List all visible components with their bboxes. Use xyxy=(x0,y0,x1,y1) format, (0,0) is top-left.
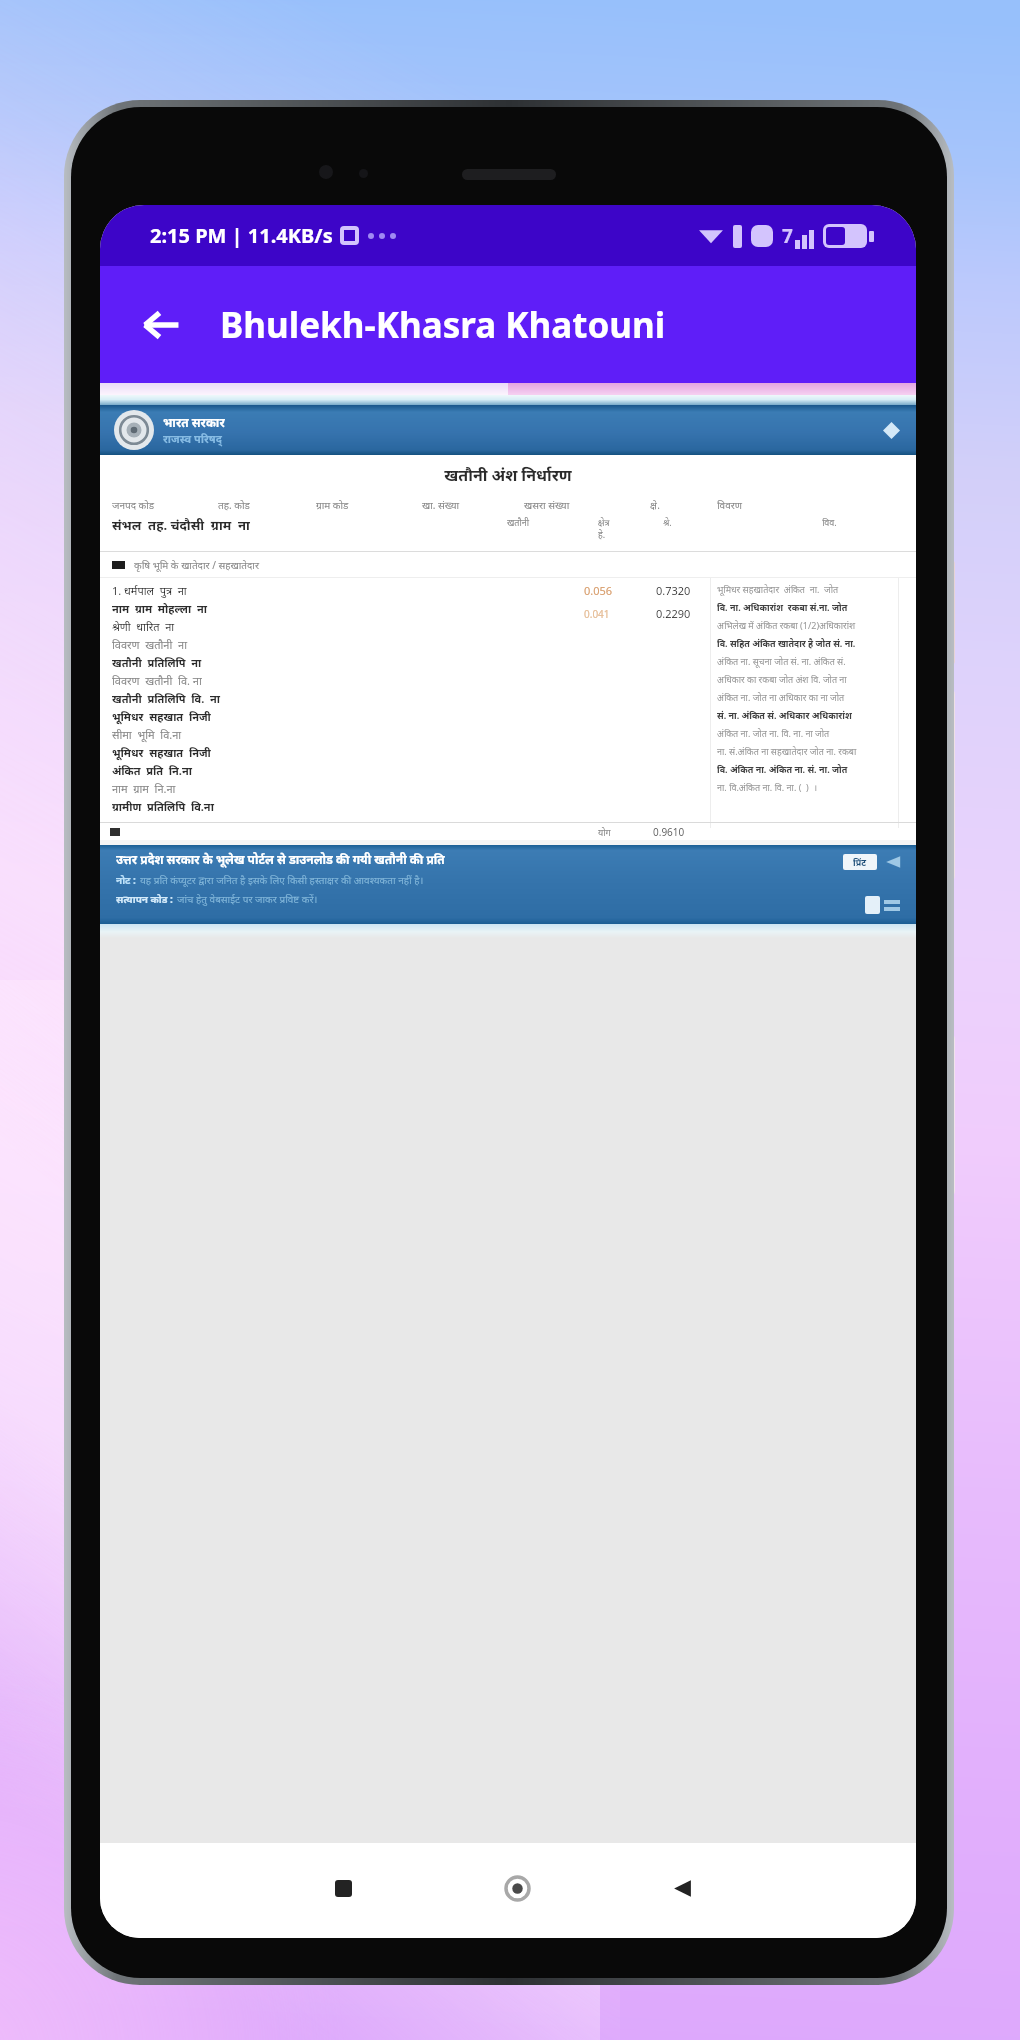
staticText: अंकित ना. सूचना जोत सं. ना. अंकित सं. xyxy=(717,655,846,667)
staticText: भूमिधर सहखातेदार अंकित ना. जोत xyxy=(717,583,839,595)
staticText: 0.7320 xyxy=(656,583,691,598)
staticText: योग xyxy=(598,826,611,838)
staticText: विवरण खतौनी ना xyxy=(112,637,187,652)
staticText: विवरण खतौनी वि. ना xyxy=(112,673,202,688)
staticText: तह. कोड xyxy=(218,498,250,512)
staticText: 0.2290 xyxy=(656,606,691,621)
staticText: सत्यापन कोड : xyxy=(116,892,173,906)
staticText: क्षेत्र हे. xyxy=(598,516,610,540)
staticText: जनपद कोड xyxy=(112,498,155,512)
staticText: श्रे. xyxy=(663,516,672,528)
staticText: खतौनी xyxy=(507,516,530,528)
button[interactable]: Back xyxy=(128,292,194,358)
staticText: खसरा संख्या xyxy=(524,498,570,512)
staticText: विव. xyxy=(822,516,837,528)
staticText: संभल तह. चंदौसी ग्राम ना xyxy=(112,516,250,534)
staticText: 7 xyxy=(782,223,793,249)
staticText: वि. ना. अधिकारांश रकबा सं.ना. जोत xyxy=(717,601,848,613)
staticText: भारत सरकार xyxy=(163,414,225,430)
staticText: 0.041 xyxy=(584,607,610,621)
staticText: भूमिधर सहखात निजी xyxy=(112,745,211,760)
staticText: राजस्व परिषद् xyxy=(163,431,222,446)
staticText: यह प्रति कंप्यूटर द्वारा जनित है इसके लि… xyxy=(140,873,424,887)
staticText: उत्तर प्रदेश सरकार के भूलेख पोर्टल से डा… xyxy=(116,851,445,867)
staticText: 0.056 xyxy=(584,583,613,598)
staticText: वि. सहित अंकित खातेदार है जोत सं. ना. xyxy=(717,637,856,649)
staticText: खतौनी प्रतिलिपि ना xyxy=(112,655,202,670)
staticText: विवरण xyxy=(717,498,743,512)
staticText: खतौनी अंश निर्धारण xyxy=(100,464,916,486)
staticText: नोट : xyxy=(116,873,136,887)
staticText: ना. वि.अंकित ना. वि. ना. ( ) । xyxy=(717,781,817,793)
button[interactable]: Back xyxy=(654,1843,710,1938)
staticText: ग्राम कोड xyxy=(316,498,349,512)
staticText: जांच हेतु वेबसाईट पर जाकर प्रविष्ट करें। xyxy=(177,892,318,906)
staticText: खा. संख्या xyxy=(422,498,460,512)
staticText: अंकित ना. जोत ना अधिकार का ना जोत xyxy=(717,691,845,703)
staticText: भूमिधर सहखात निजी xyxy=(112,709,211,724)
staticText: 0.9610 xyxy=(653,825,685,839)
staticText: Bhulekh-Khasra Khatouni xyxy=(220,301,666,349)
staticText: अभिलेख में अंकित रकबा (1/2)अधिकारांश xyxy=(717,619,856,631)
staticText: श्रेणी धारित ना xyxy=(112,619,175,634)
staticText: ना. सं.अंकित ना सहखातेदार जोत ना. रकबा xyxy=(717,745,857,757)
staticText: अधिकार का रकबा जोत अंश वि. जोत ना xyxy=(717,673,847,685)
staticText: अंकित प्रति नि.ना xyxy=(112,763,192,778)
staticText: वि. अंकित ना. अंकित ना. सं. ना. जोत xyxy=(717,763,848,775)
button[interactable]: प्रिंट xyxy=(843,854,877,870)
staticText: ग्रामीण प्रतिलिपि वि.ना xyxy=(112,799,214,814)
staticText: नाम ग्राम मोहल्ला ना xyxy=(112,601,207,616)
staticText: खतौनी प्रतिलिपि वि. ना xyxy=(112,691,220,706)
button[interactable]: Recents xyxy=(315,1843,371,1938)
staticText: 2:15 PM | 11.4KB/s xyxy=(150,222,333,249)
staticText: नाम ग्राम नि.ना xyxy=(112,781,176,796)
staticText: क्षे. xyxy=(650,498,660,512)
staticText: सं. ना. अंकित सं. अधिकार अधिकारांश xyxy=(717,709,852,721)
staticText: 1. धर्मपाल पुत्र ना xyxy=(112,583,187,598)
staticText: सीमा भूमि वि.ना xyxy=(112,727,182,742)
staticText: अंकित ना. जोत ना. वि. ना. ना जोत xyxy=(717,727,830,739)
staticText: प्रिंट xyxy=(853,856,867,868)
button[interactable]: Home xyxy=(489,1843,545,1938)
staticText: कृषि भूमि के खातेदार / सहखातेदार xyxy=(134,558,260,572)
